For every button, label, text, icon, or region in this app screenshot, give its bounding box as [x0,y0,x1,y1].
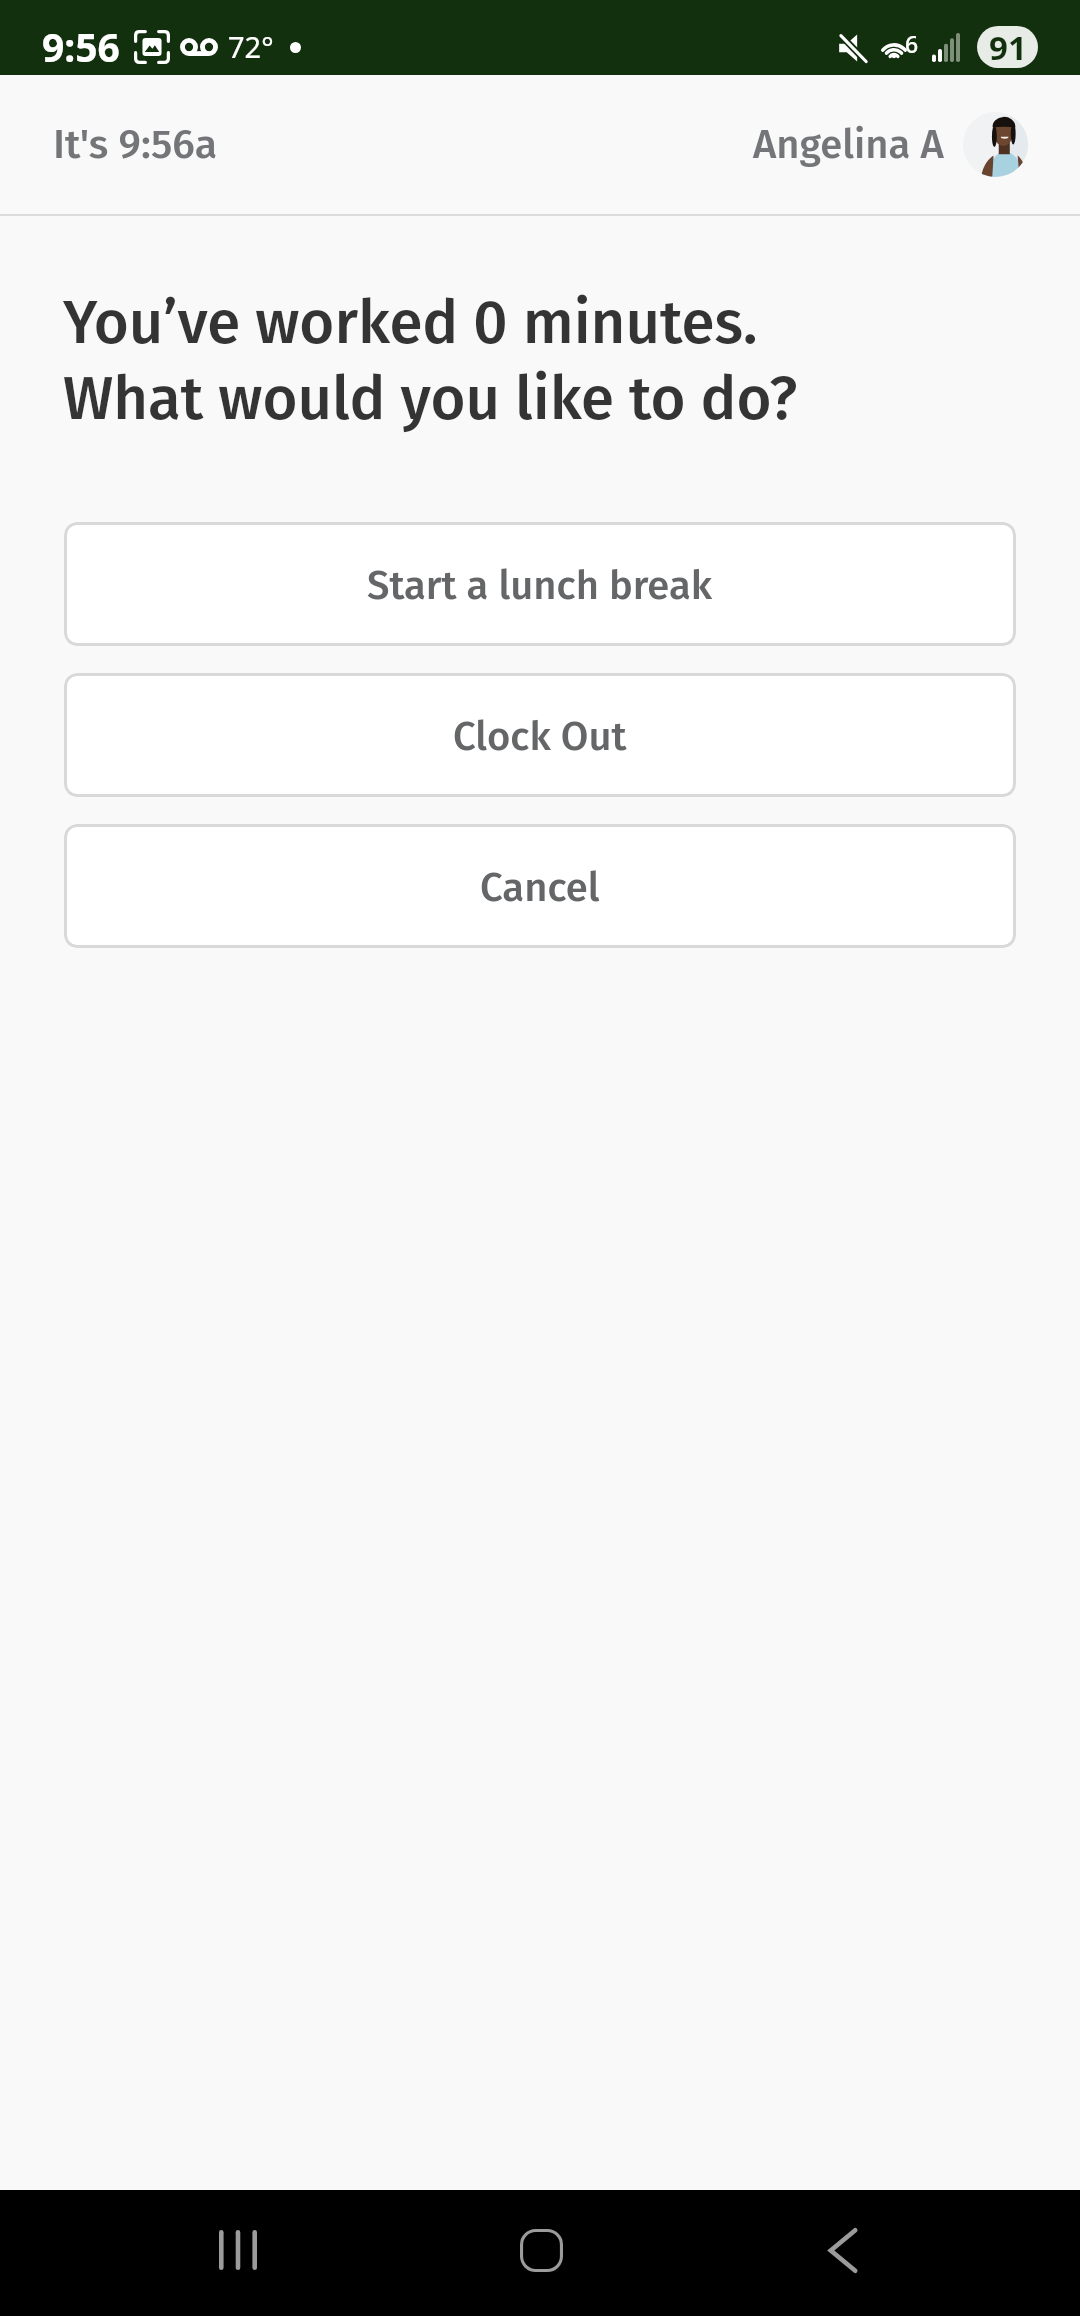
button[interactable]: Back [773,2190,913,2310]
button[interactable]: Recent apps [168,2190,308,2310]
staticText: 91 [989,26,1027,67]
staticText: Angelina A [753,121,944,169]
staticText: 6 [905,28,919,59]
staticText: Start a lunch break [367,562,713,610]
staticText: 72° [228,27,274,66]
button[interactable]: Clock Out [64,673,1016,797]
button[interactable]: Cancel [64,824,1016,948]
staticText: You’ve worked 0 minutes. What would you … [63,287,798,435]
staticText: Clock Out [453,713,627,761]
staticText: It's 9:56a [53,120,218,169]
button[interactable]: Start a lunch break [64,522,1016,646]
button[interactable]: Home [471,2190,611,2310]
other: Profile photo [963,112,1028,177]
button[interactable]: Angelina A [753,112,1028,177]
staticText: Cancel [480,864,600,912]
staticText: 9:56 [42,20,120,73]
